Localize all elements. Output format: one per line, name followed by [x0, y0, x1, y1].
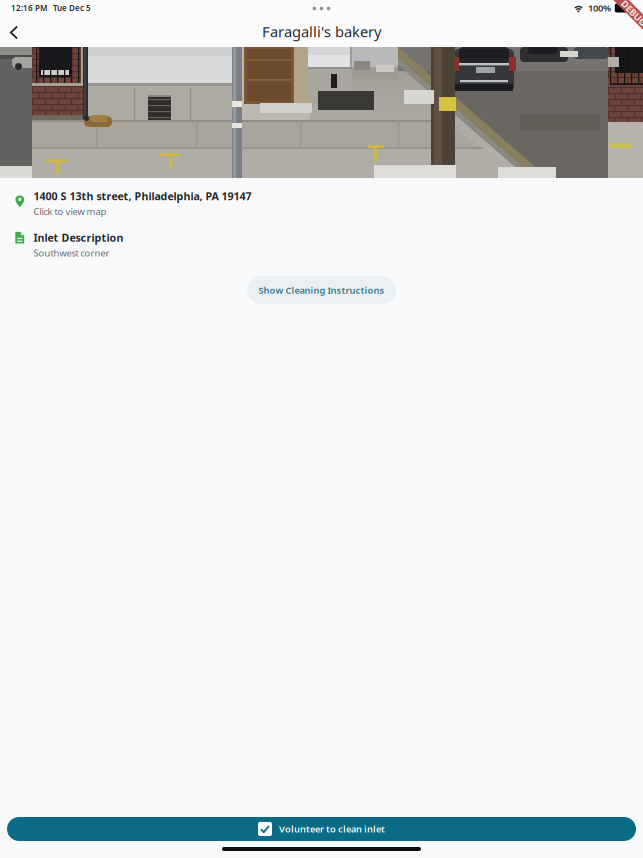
staticText: Tue Dec 5 — [53, 3, 91, 13]
staticText: Show Cleaning Instructions — [258, 284, 384, 296]
staticText: 12:16 PM — [11, 3, 47, 13]
staticText: DEBUG — [618, 7, 643, 19]
staticText: Southwest corner — [33, 247, 109, 259]
button[interactable]: Back — [0, 16, 28, 47]
staticText: Volunteer to clean inlet — [279, 823, 385, 835]
button[interactable]: 1400 S 13th street, Philadelphia, PA 191… — [0, 178, 643, 218]
staticText: Faragalli's bakery — [262, 22, 381, 41]
staticText: Inlet Description — [33, 231, 123, 245]
button[interactable]: Show Cleaning Instructions — [247, 276, 396, 304]
staticText: Click to view map — [34, 205, 107, 218]
button[interactable]: Volunteer to clean inlet — [7, 817, 636, 841]
staticText: 100% — [588, 2, 611, 14]
staticText: 1400 S 13th street, Philadelphia, PA 191… — [34, 189, 252, 203]
